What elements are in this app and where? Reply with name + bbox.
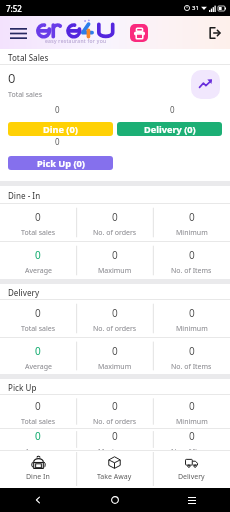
- staticText: 0: [189, 429, 195, 443]
- staticText: 0: [189, 399, 195, 413]
- staticText: Total sales: [21, 324, 56, 334]
- staticText: 0: [55, 104, 60, 115]
- staticText: 0: [55, 136, 60, 147]
- staticText: Total Sales: [8, 52, 49, 63]
- button[interactable]: 0: [153, 429, 230, 450]
- staticText: 0: [112, 429, 118, 443]
- staticText: 0: [189, 306, 195, 320]
- button[interactable]: Back: [0, 488, 76, 512]
- staticText: 0: [35, 344, 41, 358]
- staticText: No. of orders: [93, 228, 137, 238]
- staticText: Maximum: [98, 362, 132, 372]
- button[interactable]: 0: [0, 429, 76, 450]
- staticText: No. of Items: [171, 447, 212, 450]
- button[interactable]: Sales trend: [191, 70, 220, 99]
- staticText: 0: [170, 104, 175, 115]
- staticText: Delivery: [178, 472, 205, 482]
- button[interactable]: Home: [76, 488, 153, 512]
- staticText: No. of orders: [93, 324, 137, 334]
- staticText: 0: [112, 344, 118, 358]
- button[interactable]: 0: [76, 338, 153, 374]
- button[interactable]: 0: [0, 242, 76, 279]
- button[interactable]: 0: [76, 395, 153, 428]
- button[interactable]: Open navigation menu: [5, 20, 32, 47]
- staticText: Take Away: [97, 472, 132, 482]
- staticText: Minimum: [176, 417, 208, 427]
- button[interactable]: 0: [153, 204, 230, 241]
- button[interactable]: 0: [153, 242, 230, 279]
- staticText: Maximum: [98, 447, 132, 450]
- staticText: 0: [112, 306, 118, 320]
- button[interactable]: Recent apps: [153, 488, 230, 512]
- button[interactable]: 0: [0, 300, 76, 337]
- staticText: Dine - In: [8, 190, 41, 201]
- staticText: 0: [35, 399, 41, 413]
- staticText: 0: [189, 248, 195, 262]
- staticText: 0: [112, 399, 118, 413]
- staticText: No. of Items: [171, 266, 212, 276]
- button[interactable]: Dine In: [0, 450, 76, 488]
- staticText: Maximum: [98, 266, 132, 276]
- staticText: 0: [35, 306, 41, 320]
- staticText: 31: [192, 4, 199, 12]
- staticText: Average: [25, 266, 52, 276]
- button[interactable]: Take Away: [76, 450, 153, 488]
- button[interactable]: 0: [0, 395, 76, 428]
- button[interactable]: Logout: [204, 23, 224, 43]
- staticText: Total sales: [21, 228, 56, 238]
- staticText: No. of orders: [93, 417, 137, 427]
- staticText: 7:52: [6, 3, 22, 14]
- button[interactable]: Pick Up (0): [8, 156, 113, 170]
- staticText: Pick Up: [8, 382, 37, 393]
- staticText: easy restaurant for you: [45, 38, 107, 45]
- button[interactable]: Dine (0): [8, 122, 113, 136]
- staticText: Total sales: [21, 417, 56, 427]
- button[interactable]: 0: [76, 204, 153, 241]
- staticText: Delivery (0): [144, 123, 196, 136]
- staticText: 0: [35, 210, 41, 224]
- staticText: Dine In: [26, 472, 50, 482]
- button[interactable]: 0: [153, 300, 230, 337]
- button[interactable]: 0: [153, 338, 230, 374]
- staticText: 0: [189, 344, 195, 358]
- staticText: 0: [35, 429, 41, 443]
- staticText: 0: [112, 210, 118, 224]
- button[interactable]: 0: [0, 338, 76, 374]
- button[interactable]: Print: [130, 24, 148, 42]
- staticText: Total sales: [8, 90, 43, 100]
- button[interactable]: 0: [76, 242, 153, 279]
- staticText: Delivery: [8, 287, 40, 298]
- button[interactable]: Delivery (0): [117, 122, 222, 136]
- staticText: Minimum: [176, 324, 208, 334]
- button[interactable]: 0: [0, 204, 76, 241]
- staticText: No. of Items: [171, 362, 212, 372]
- staticText: Average: [25, 447, 52, 450]
- button[interactable]: 0: [76, 300, 153, 337]
- staticText: Dine (0): [43, 123, 78, 136]
- staticText: 0: [112, 248, 118, 262]
- staticText: Average: [25, 362, 52, 372]
- staticText: Pick Up (0): [37, 157, 85, 170]
- staticText: Minimum: [176, 228, 208, 238]
- button[interactable]: Delivery: [153, 450, 230, 488]
- button[interactable]: 0: [76, 429, 153, 450]
- button[interactable]: 0: [153, 395, 230, 428]
- staticText: 0: [35, 248, 41, 262]
- staticText: 0: [189, 210, 195, 224]
- staticText: 0: [8, 69, 16, 87]
